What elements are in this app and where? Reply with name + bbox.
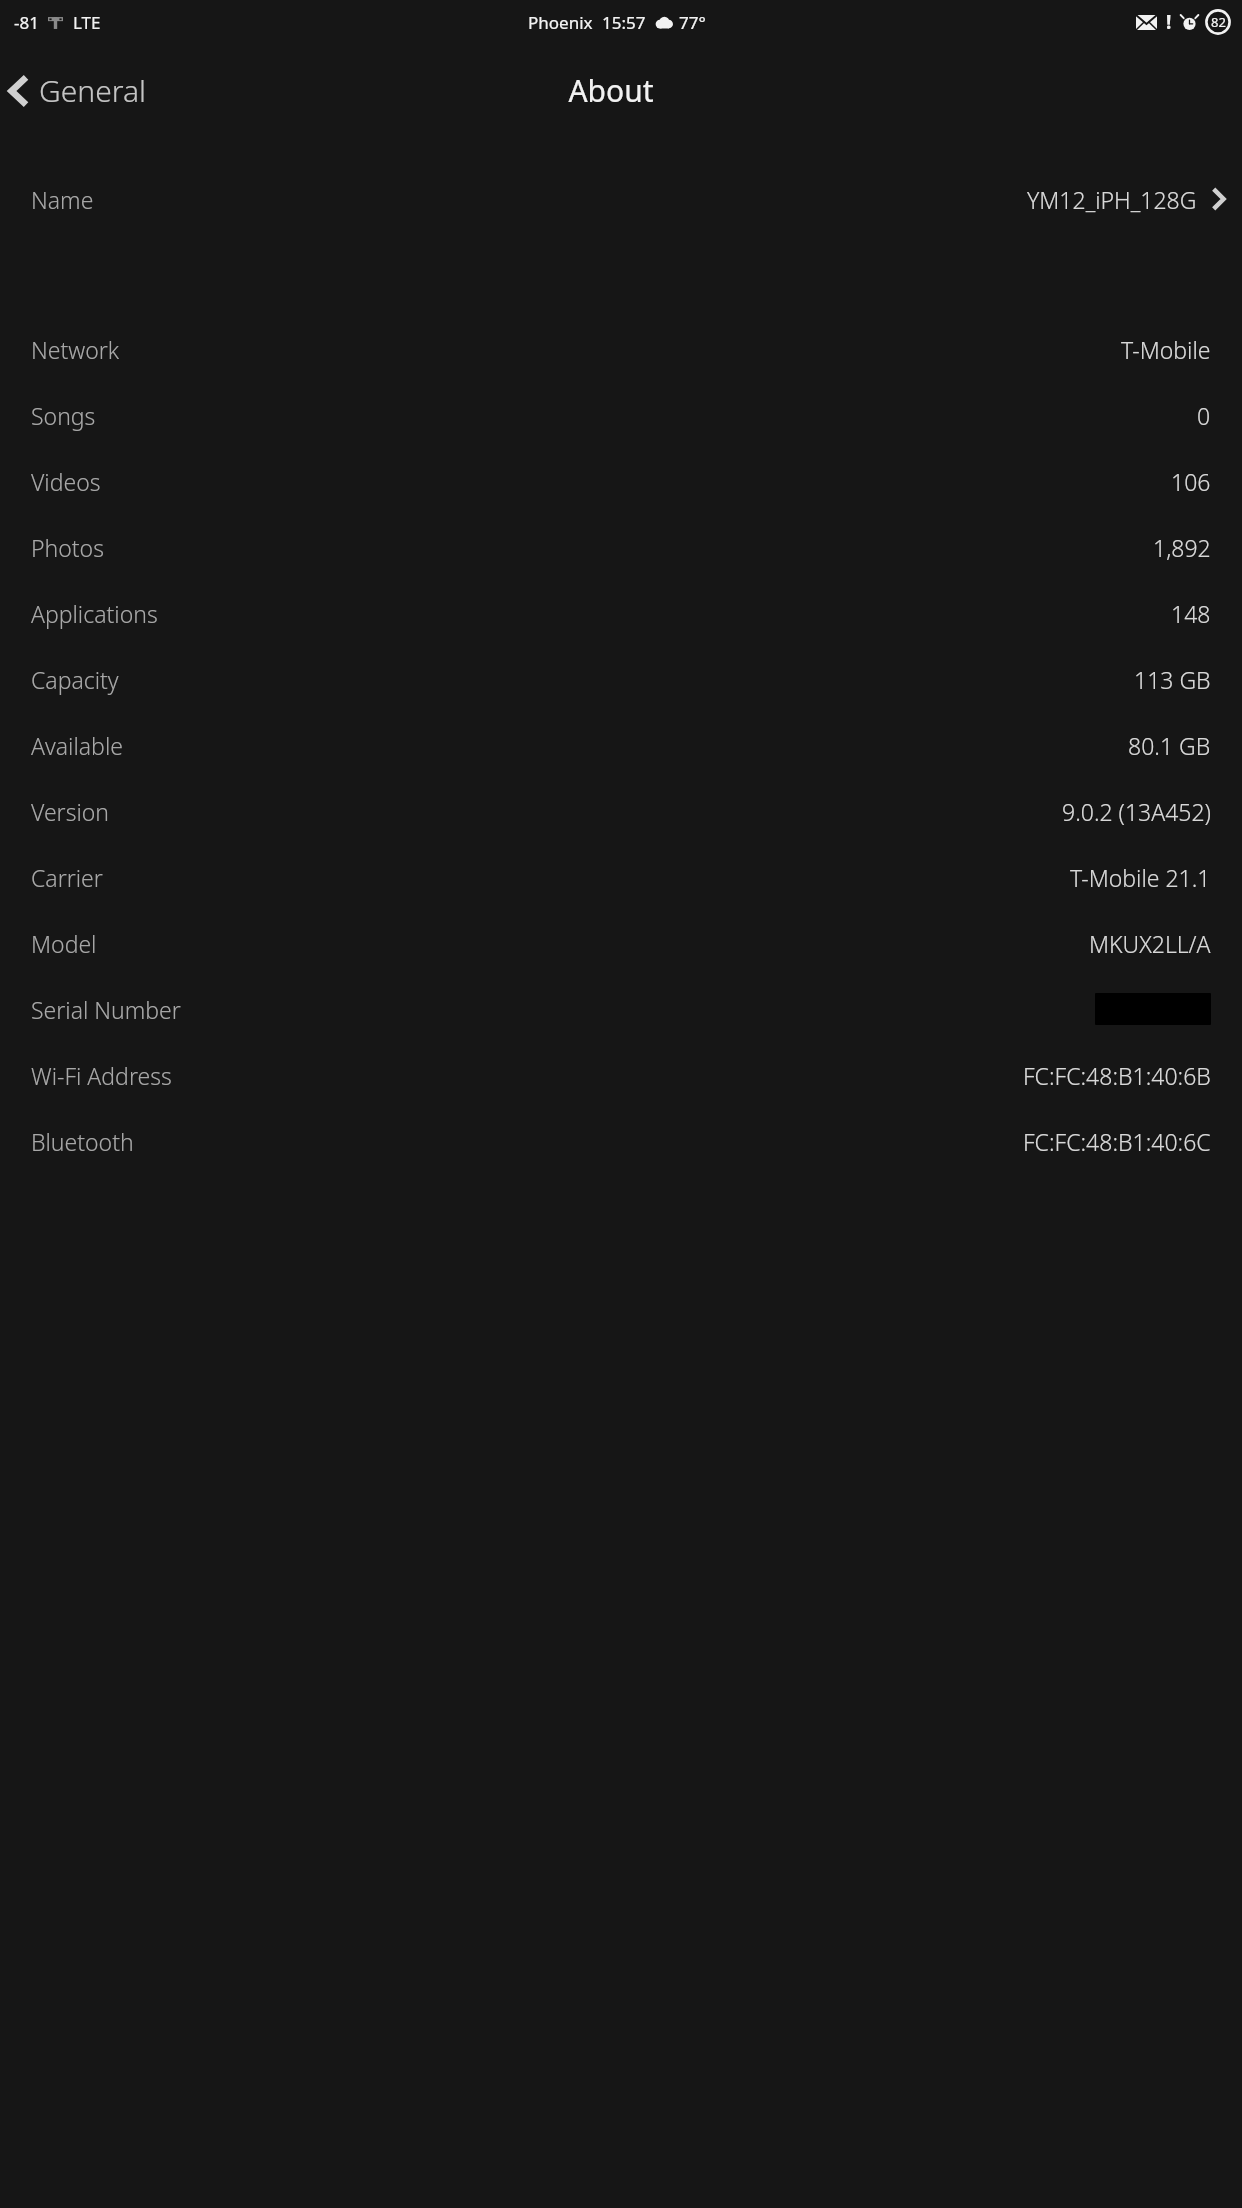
staticText: Capacity [31, 664, 119, 695]
staticText: 0 [1197, 400, 1211, 431]
staticText: Applications [31, 598, 158, 629]
staticText: Wi-Fi Address [31, 1060, 172, 1091]
button[interactable]: Serial Number [0, 976, 1242, 1042]
staticText: 113 GB [1134, 664, 1211, 695]
staticText: 9.0.2 (13A452) [1062, 796, 1211, 827]
button[interactable]: Available [0, 712, 1242, 778]
other: Edit name [1211, 186, 1226, 212]
button[interactable]: Capacity [0, 646, 1242, 712]
staticText: Videos [31, 466, 101, 497]
button[interactable]: Network [0, 316, 1242, 382]
staticText: Available [31, 730, 123, 761]
staticText: 80.1 GB [1128, 730, 1211, 761]
staticText: Name [31, 184, 94, 215]
staticText: 82 [1211, 13, 1226, 31]
staticText: Phoenix [528, 11, 593, 34]
button[interactable]: Name [0, 166, 1242, 232]
staticText: Photos [31, 532, 104, 563]
staticText: FC:FC:48:B1:40:6B [1023, 1060, 1211, 1091]
staticText: 1,892 [1153, 532, 1211, 563]
staticText: YM12_iPH_128G [1027, 184, 1197, 215]
staticText: FC:FC:48:B1:40:6C [1023, 1126, 1211, 1157]
staticText: Version [31, 796, 110, 827]
staticText: 77° [679, 11, 706, 34]
staticText: Bluetooth [31, 1126, 134, 1157]
staticText: ! [1166, 9, 1172, 35]
button[interactable]: Carrier [0, 844, 1242, 910]
staticText: -81 [14, 11, 39, 34]
button[interactable]: Wi-Fi Address [0, 1042, 1242, 1108]
staticText: 148 [1171, 598, 1211, 629]
staticText: MKUX2LL/A [1089, 928, 1211, 959]
staticText: T-Mobile [1121, 334, 1211, 365]
staticText: 106 [1171, 466, 1211, 497]
staticText: Carrier [31, 862, 103, 893]
staticText: General [39, 70, 146, 111]
button[interactable]: Videos [0, 448, 1242, 514]
staticText: About [568, 70, 654, 111]
button[interactable]: Photos [0, 514, 1242, 580]
staticText: Network [31, 334, 120, 365]
button[interactable]: General [0, 66, 162, 115]
staticText: 15:57 [602, 11, 646, 34]
staticText: LTE [73, 11, 101, 34]
button[interactable]: Songs [0, 382, 1242, 448]
button[interactable]: Model [0, 910, 1242, 976]
staticText: T-Mobile 21.1 [1070, 862, 1211, 893]
staticText: Serial Number [31, 994, 181, 1025]
staticText: Songs [31, 400, 96, 431]
button[interactable]: Version [0, 778, 1242, 844]
staticText: Model [31, 928, 97, 959]
button[interactable]: Bluetooth [0, 1108, 1242, 1174]
button[interactable]: Applications [0, 580, 1242, 646]
